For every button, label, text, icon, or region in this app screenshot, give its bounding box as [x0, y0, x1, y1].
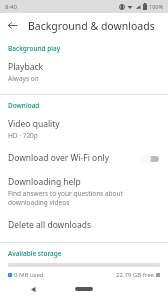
staticText: 8:40	[5, 3, 17, 11]
staticText: 22.79 GB free	[116, 271, 154, 278]
staticText: Available storage	[8, 249, 62, 258]
button[interactable]: Delete all downloads	[0, 212, 168, 238]
staticText: Video quality	[8, 118, 60, 130]
staticText: Download over Wi-Fi only	[8, 152, 140, 164]
staticText: Always on	[8, 74, 39, 83]
button[interactable]: Back	[26, 282, 40, 296]
staticText: 0 MB used	[14, 271, 44, 278]
button[interactable]: Download over Wi-Fi only	[0, 145, 168, 171]
button[interactable]: Back	[0, 13, 25, 38]
staticText: Delete all downloads	[8, 219, 91, 231]
staticText: Find answers to your questions about dow…	[8, 189, 160, 207]
button[interactable]: Downloading help	[0, 171, 168, 212]
staticText: 100%	[149, 3, 164, 10]
staticText: Background play	[8, 44, 61, 53]
staticText: Downloading help	[8, 176, 81, 188]
staticText: HD · 720p	[8, 131, 38, 140]
button[interactable]: Video quality	[0, 113, 168, 145]
staticText: Playback	[8, 61, 44, 73]
button[interactable]: Home	[73, 282, 95, 296]
staticText: Background & downloads	[28, 19, 155, 33]
staticText: Download	[8, 101, 40, 110]
button[interactable]: Playback	[0, 56, 168, 88]
